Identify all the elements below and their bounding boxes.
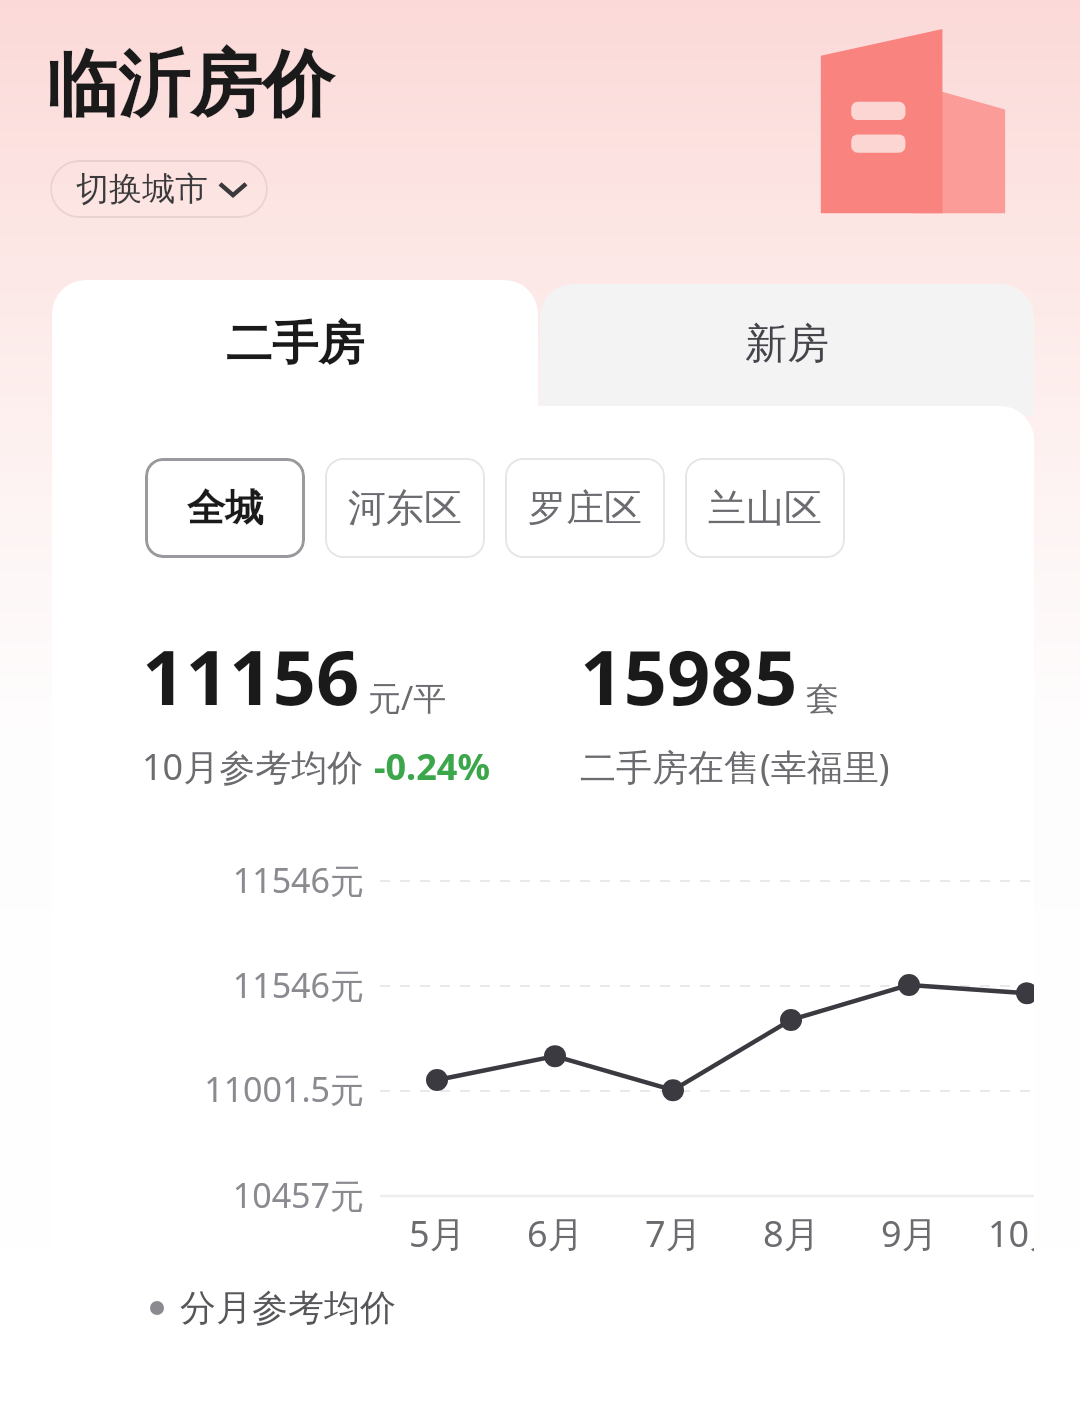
- button[interactable]: 新房: [540, 284, 1034, 416]
- staticText: 切换城市: [76, 168, 208, 210]
- staticText: 11546元: [112, 962, 364, 1008]
- staticText: 10月参考均价: [142, 742, 364, 791]
- staticText: 二手房在售(幸福里): [580, 742, 890, 791]
- button[interactable]: 全城: [145, 458, 305, 558]
- button[interactable]: 罗庄区: [505, 458, 665, 558]
- staticText: -0.24%: [374, 742, 490, 791]
- staticText: 11001.5元: [112, 1066, 364, 1112]
- staticText: 套: [806, 678, 839, 720]
- staticText: 元/平: [368, 675, 447, 720]
- staticText: 8月: [763, 1209, 820, 1258]
- staticText: 罗庄区: [528, 484, 642, 532]
- staticText: 11546元: [112, 857, 364, 903]
- button[interactable]: 切换城市: [50, 160, 268, 218]
- staticText: 9月: [881, 1209, 938, 1258]
- staticText: 6月: [527, 1209, 584, 1258]
- staticText: 临沂房价: [46, 40, 334, 131]
- button[interactable]: 兰山区: [685, 458, 845, 558]
- staticText: 兰山区: [708, 484, 822, 532]
- button[interactable]: 二手房: [52, 280, 538, 416]
- staticText: 河东区: [348, 484, 462, 532]
- staticText: 全城: [187, 484, 263, 532]
- staticText: 分月参考均价: [180, 1285, 396, 1330]
- staticText: 5月: [409, 1209, 466, 1258]
- staticText: 二手房: [226, 315, 364, 373]
- other: 房价图标: [818, 26, 1008, 218]
- staticText: 10月: [988, 1209, 1034, 1258]
- staticText: 新房: [745, 318, 829, 371]
- button[interactable]: 河东区: [325, 458, 485, 558]
- staticText: 11156: [142, 624, 360, 728]
- staticText: 10457元: [112, 1172, 364, 1218]
- staticText: 15985: [580, 624, 798, 728]
- staticText: 7月: [645, 1209, 702, 1258]
